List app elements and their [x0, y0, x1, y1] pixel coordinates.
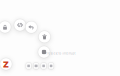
- button[interactable]: Undo: [25, 21, 37, 33]
- button[interactable]: Delete: [38, 31, 50, 43]
- button[interactable]: Tools: [33, 63, 39, 69]
- button[interactable]: Model: [41, 63, 46, 69]
- button[interactable]: More: [48, 63, 54, 69]
- button[interactable]: Permissions: [0, 21, 11, 33]
- button[interactable]: Code: [14, 19, 26, 31]
- button[interactable]: Assistant: [0, 58, 12, 70]
- staticText: Press esc to interrupt: [45, 52, 75, 55]
- button[interactable]: Stop: [38, 46, 50, 58]
- staticText: Z: [3, 58, 9, 70]
- button[interactable]: Attach: [26, 63, 31, 69]
